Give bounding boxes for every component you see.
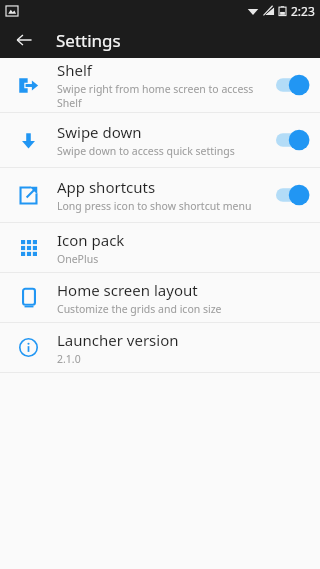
- button[interactable]: Back: [8, 24, 40, 56]
- staticText: Launcher version: [57, 330, 179, 350]
- staticText: Shelf: [57, 60, 92, 80]
- button[interactable]: Home screen layout: [0, 273, 320, 322]
- staticText: 2.1.0: [57, 352, 81, 366]
- staticText: 2:23: [291, 3, 315, 19]
- staticText: Home screen layout: [57, 280, 198, 300]
- staticText: Customize the grids and icon size: [57, 302, 222, 316]
- button[interactable]: App shortcuts toggle: [268, 175, 320, 215]
- button[interactable]: Launcher version: [0, 323, 320, 372]
- staticText: Icon pack: [57, 230, 125, 250]
- staticText: OnePlus: [57, 252, 99, 266]
- button[interactable]: Shelf: [0, 58, 320, 112]
- staticText: Swipe down: [57, 122, 142, 142]
- button[interactable]: App shortcuts: [0, 168, 320, 222]
- button[interactable]: Icon pack: [0, 223, 320, 272]
- button[interactable]: Swipe down toggle: [268, 120, 320, 160]
- button[interactable]: Swipe down: [0, 113, 320, 167]
- staticText: Swipe right from home screen to access S…: [57, 82, 268, 110]
- staticText: App shortcuts: [57, 177, 156, 197]
- staticText: Long press icon to show shortcut menu: [57, 199, 252, 213]
- button[interactable]: Shelf toggle: [268, 65, 320, 105]
- staticText: Settings: [56, 29, 121, 52]
- staticText: Swipe down to access quick settings: [57, 144, 235, 158]
